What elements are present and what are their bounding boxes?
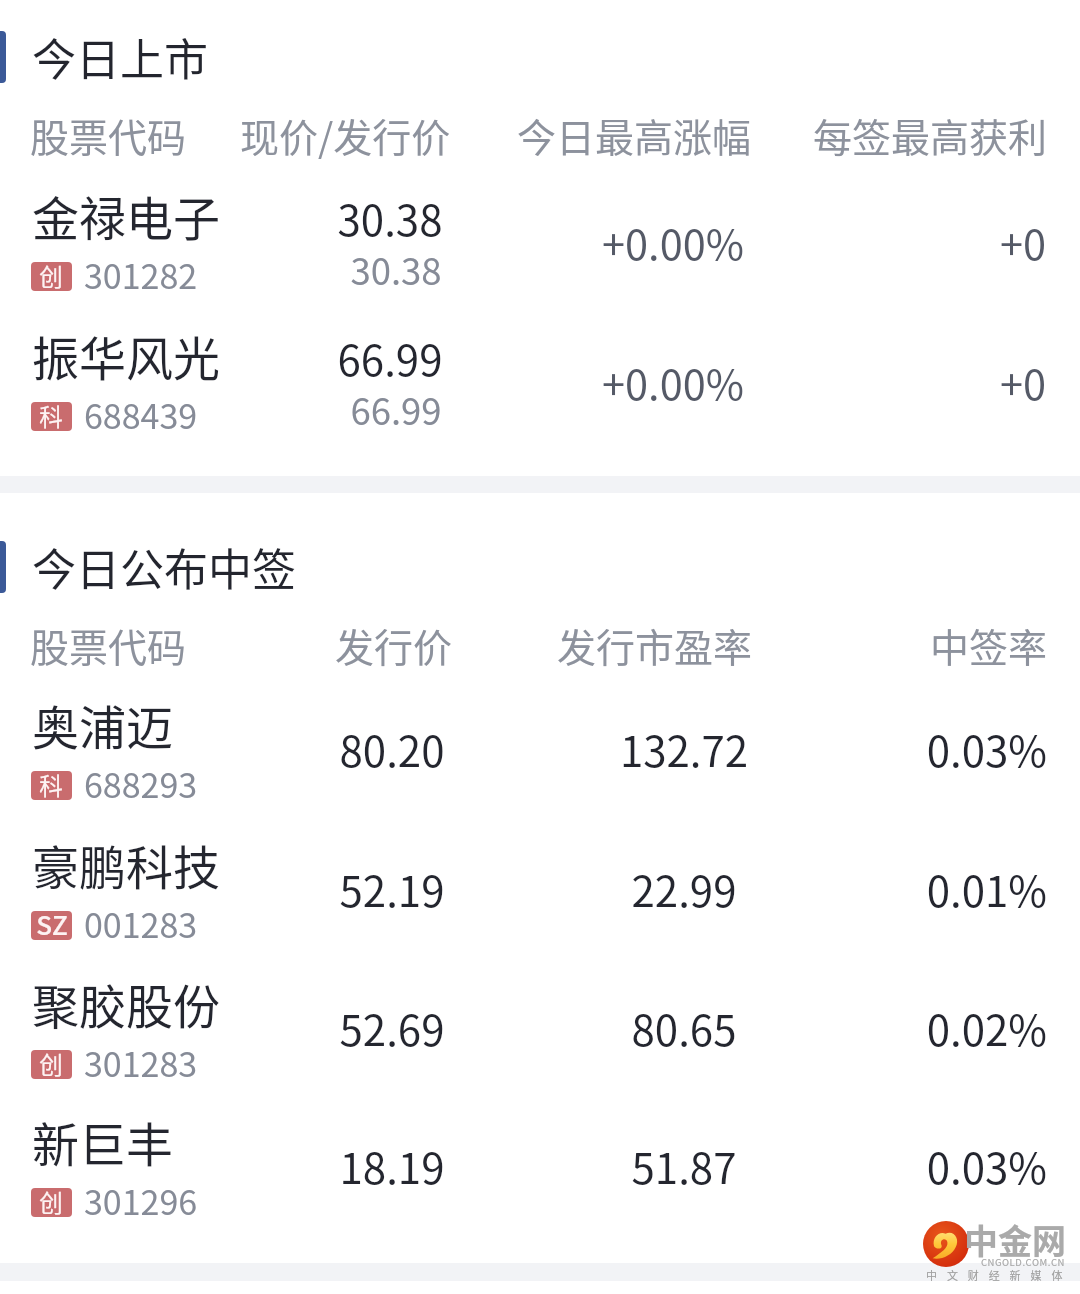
staticText: 18.19 <box>82 1135 702 1196</box>
staticText: 振华风光 <box>32 321 652 389</box>
staticText: +0.00% <box>363 352 983 412</box>
button[interactable]: 聚胶股份 <box>0 962 1080 1090</box>
staticText: 发行价 <box>335 617 955 673</box>
staticText: 股票代码 <box>30 617 650 673</box>
staticText: SZ <box>0 905 362 943</box>
staticText: 0.01% <box>427 858 1047 919</box>
staticText: 52.19 <box>82 858 702 919</box>
staticText: 22.99 <box>374 858 994 919</box>
staticText: 66.99 <box>86 383 706 436</box>
staticText: +0 <box>426 352 1046 412</box>
staticText: 金禄电子 <box>32 181 652 249</box>
staticText: +0 <box>426 212 1046 272</box>
staticText: 今日上市 <box>32 25 652 89</box>
staticText: 聚胶股份 <box>32 969 652 1037</box>
staticText: 创 <box>0 1185 361 1219</box>
staticText: 30.38 <box>86 243 706 296</box>
button[interactable]: 金禄电子 <box>0 174 1080 302</box>
staticText: 80.20 <box>82 718 702 779</box>
staticText: 301296 <box>84 1176 704 1225</box>
staticText: 688293 <box>84 759 704 808</box>
staticText: 股票代码 <box>30 107 650 163</box>
button[interactable]: 豪鹏科技 <box>0 823 1080 951</box>
button[interactable]: 奥浦迈 <box>0 683 1080 811</box>
button[interactable]: 新巨丰 <box>0 1100 1080 1228</box>
staticText: 现价/发行价 <box>240 107 860 163</box>
staticText: 中文财经新媒体 <box>926 1267 1080 1283</box>
staticText: 今日公布中签 <box>32 535 652 599</box>
staticText: 科 <box>0 768 361 802</box>
staticText: 132.72 <box>374 718 994 779</box>
staticText: 创 <box>0 259 361 293</box>
staticText: 301282 <box>84 250 704 299</box>
staticText: 0.03% <box>427 718 1047 779</box>
staticText: 0.03% <box>427 1135 1047 1196</box>
staticText: 52.69 <box>82 997 702 1058</box>
staticText: +0.00% <box>363 212 983 272</box>
staticText: 30.38 <box>80 187 700 248</box>
staticText: 科 <box>0 399 361 433</box>
staticText: 奥浦迈 <box>32 690 652 758</box>
staticText: 80.65 <box>374 997 994 1058</box>
staticText: 今日最高涨幅 <box>517 107 1080 163</box>
staticText: 每签最高获利 <box>427 107 1047 163</box>
staticText: 豪鹏科技 <box>32 830 652 898</box>
button[interactable]: 振华风光 <box>0 314 1080 442</box>
staticText: 中签率 <box>427 617 1047 673</box>
staticText: 51.87 <box>374 1135 994 1196</box>
staticText: 0.02% <box>427 997 1047 1058</box>
staticText: 688439 <box>84 390 704 439</box>
staticText: CNGOLD.COM.CN <box>445 1255 1065 1269</box>
staticText: 001283 <box>84 899 704 948</box>
staticText: 66.99 <box>80 327 700 388</box>
other: 中金网 logo <box>923 1221 969 1267</box>
staticText: 创 <box>0 1047 361 1081</box>
staticText: 301283 <box>84 1038 704 1087</box>
staticText: 中金网 <box>446 1215 1066 1264</box>
staticText: 发行市盈率 <box>557 617 1080 673</box>
staticText: 新巨丰 <box>32 1107 652 1175</box>
